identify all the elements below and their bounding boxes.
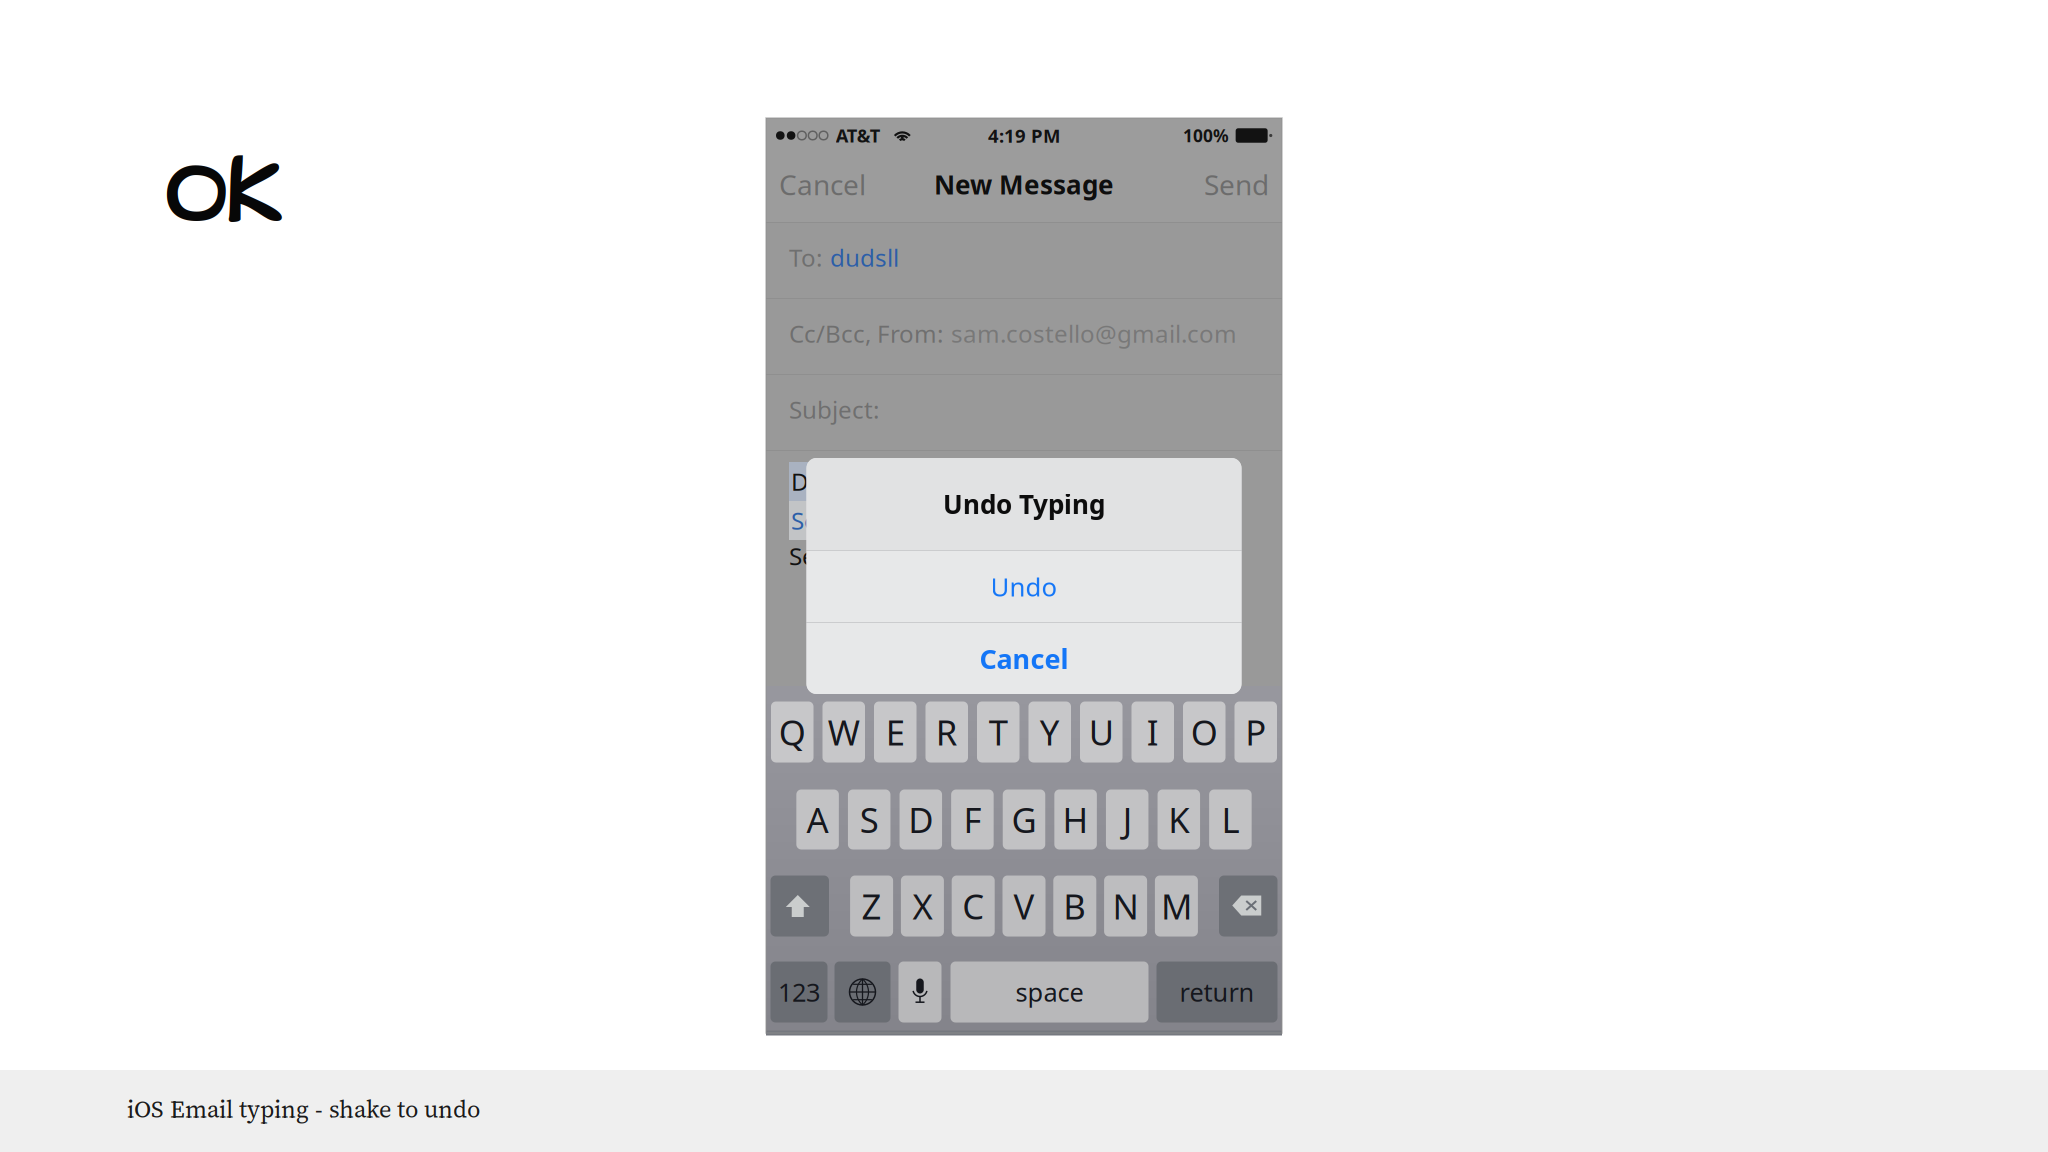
button[interactable]: P	[1234, 701, 1277, 762]
staticText: Undo	[990, 569, 1057, 604]
button[interactable]: M	[1155, 875, 1198, 936]
button[interactable]: V	[1002, 875, 1045, 936]
button[interactable]: return	[1156, 961, 1277, 1022]
staticText: return	[1179, 975, 1254, 1009]
staticText: Y	[1040, 708, 1060, 756]
button[interactable]: X	[901, 875, 944, 936]
button[interactable]: R	[925, 701, 968, 762]
button[interactable]: Shift	[770, 875, 829, 936]
staticText: Subject:	[789, 393, 879, 426]
staticText: 123	[778, 975, 820, 1009]
button[interactable]: U	[1080, 701, 1122, 762]
staticText: I	[1147, 708, 1159, 756]
button[interactable]: Cancel	[766, 154, 866, 220]
staticText: Cc/Bcc, From:	[789, 317, 943, 350]
button[interactable]: W	[822, 701, 865, 762]
staticText: Dear Sam — here are the notes	[791, 465, 1149, 498]
button[interactable]: Send	[1204, 154, 1282, 220]
staticText: 100%	[1183, 124, 1229, 147]
staticText: X	[912, 882, 932, 930]
staticText: R	[936, 708, 958, 756]
staticText: P	[1245, 708, 1266, 756]
staticText: A	[807, 796, 829, 843]
staticText: OK	[165, 134, 279, 258]
button[interactable]: Y	[1028, 701, 1071, 762]
button[interactable]: Z	[850, 875, 893, 936]
staticText: C	[962, 882, 984, 930]
button[interactable]: C	[952, 875, 995, 936]
staticText: O	[1191, 708, 1218, 756]
staticText: V	[1013, 882, 1034, 930]
button[interactable]: 123	[770, 961, 827, 1022]
staticText: E	[886, 708, 905, 756]
button[interactable]: S	[848, 789, 890, 849]
staticText: G	[1011, 796, 1036, 843]
button[interactable]: J	[1106, 789, 1148, 849]
staticText: T	[989, 708, 1008, 756]
staticText: H	[1063, 796, 1089, 843]
button[interactable]: K	[1158, 789, 1200, 849]
button[interactable]: A	[796, 789, 839, 849]
button[interactable]: G	[1003, 789, 1045, 849]
button[interactable]: Q	[771, 701, 813, 762]
staticText: M	[1161, 882, 1192, 930]
staticText: iOS Email typing - shake to undo	[127, 1092, 480, 1125]
button[interactable]: H	[1054, 789, 1097, 849]
button[interactable]: L	[1209, 789, 1252, 849]
staticText: U	[1089, 708, 1114, 756]
staticText: J	[1123, 796, 1132, 843]
staticText: 4:19 PM	[988, 123, 1060, 148]
staticText: Sent from my iPhone	[789, 540, 1028, 572]
staticText: L	[1221, 796, 1239, 843]
staticText: Send	[1204, 165, 1269, 203]
staticText: D	[908, 796, 933, 843]
button[interactable]: Delete	[1219, 875, 1277, 936]
staticText: F	[963, 796, 981, 843]
staticText: K	[1168, 796, 1189, 843]
button[interactable]: Cancel	[806, 623, 1241, 694]
staticText: Undo Typing	[943, 486, 1105, 522]
button[interactable]: Next keyboard	[834, 961, 890, 1022]
button[interactable]: F	[951, 789, 994, 849]
staticText: Cancel	[979, 640, 1068, 677]
button[interactable]: N	[1104, 875, 1147, 936]
staticText: space	[1015, 975, 1083, 1009]
button[interactable]: Dictation	[898, 961, 941, 1022]
button[interactable]: Undo	[806, 551, 1241, 622]
button[interactable]: E	[874, 701, 916, 762]
staticText: dudsll	[830, 241, 899, 274]
button[interactable]: D	[900, 789, 942, 849]
button[interactable]: space	[950, 961, 1148, 1022]
staticText: N	[1113, 882, 1139, 930]
staticText: Cancel	[779, 165, 866, 203]
staticText: B	[1063, 882, 1086, 930]
button[interactable]: T	[977, 701, 1019, 762]
button[interactable]: O	[1183, 701, 1225, 762]
button[interactable]: B	[1053, 875, 1096, 936]
staticText: Q	[779, 708, 806, 756]
staticText: New Message	[934, 167, 1114, 202]
staticText: Z	[862, 882, 882, 930]
button[interactable]: I	[1131, 701, 1174, 762]
staticText: AT&T	[836, 123, 881, 148]
staticText: To:	[789, 241, 822, 274]
staticText: sam.costello@gmail.com	[951, 317, 1237, 350]
staticText: S	[860, 796, 879, 843]
staticText: W	[828, 708, 860, 756]
staticText: Sorry about the delay,	[791, 504, 1041, 537]
